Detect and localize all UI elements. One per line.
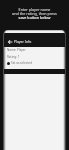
staticText: Enter player name: [0, 7, 69, 12]
button[interactable]: Back: [4, 33, 65, 47]
staticText: save button below: [0, 15, 69, 20]
staticText: Set as selected: [11, 61, 32, 65]
staticText: Name: Player: [7, 48, 26, 52]
staticText: Player Info: [14, 39, 32, 44]
button[interactable]: Back: [6, 38, 13, 45]
button[interactable]: Set as selected: [7, 61, 65, 65]
staticText: Rating: 1: [7, 55, 20, 59]
staticText: and the rating, then press: [0, 11, 69, 16]
